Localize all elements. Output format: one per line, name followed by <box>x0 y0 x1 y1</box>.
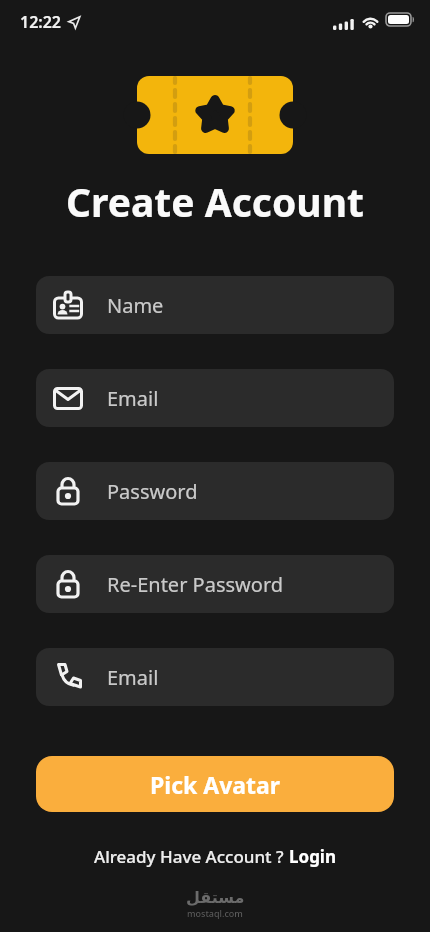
button[interactable]: Email <box>36 369 394 427</box>
staticText: Email <box>107 385 159 412</box>
staticText: 12:22 <box>20 11 62 33</box>
staticText: Create Account <box>66 175 364 228</box>
staticText: mostaql.com <box>187 907 243 919</box>
staticText: Password <box>107 478 198 505</box>
button[interactable]: Re-Enter Password <box>36 555 394 613</box>
button[interactable]: Password <box>36 462 394 520</box>
button[interactable]: Login <box>289 845 337 868</box>
staticText: Name <box>107 292 164 319</box>
staticText: Email <box>107 664 159 691</box>
button[interactable]: Email <box>36 648 394 706</box>
staticText: Pick Avatar <box>150 769 281 800</box>
button[interactable]: Pick Avatar <box>36 756 394 812</box>
button[interactable]: Name <box>36 276 394 334</box>
staticText: مستقل <box>186 888 245 907</box>
staticText: Re-Enter Password <box>107 571 284 598</box>
button[interactable]: Already Have Account ? <box>94 845 289 868</box>
